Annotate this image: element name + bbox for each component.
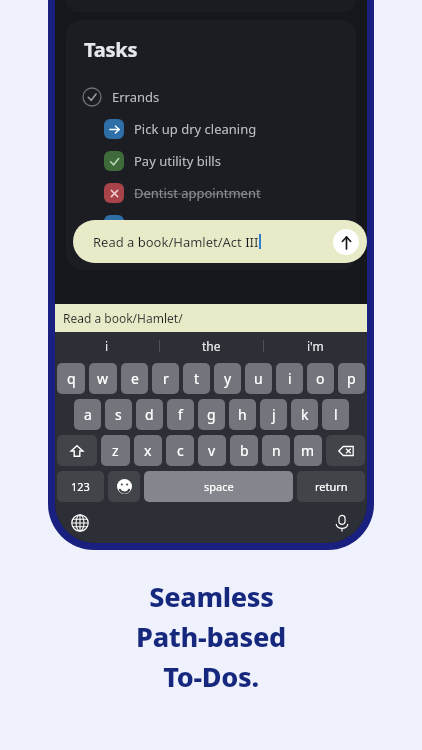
button[interactable]: Shift — [57, 435, 97, 466]
staticText: Dentist appointment — [134, 184, 261, 202]
staticText: f — [178, 405, 183, 424]
staticText: m — [301, 441, 315, 460]
staticText: the — [202, 338, 221, 354]
button[interactable]: t — [183, 363, 210, 394]
staticText: q — [67, 369, 76, 388]
staticText: Errands — [112, 88, 160, 106]
button[interactable]: Errands — [66, 81, 356, 113]
button[interactable]: v — [198, 435, 226, 466]
button[interactable]: i'm — [264, 332, 367, 360]
staticText: v — [208, 441, 216, 460]
button[interactable]: Backspace — [326, 435, 365, 466]
staticText: k — [301, 405, 309, 424]
staticText: Pick up dry cleaning — [134, 120, 257, 138]
button[interactable]: h — [229, 399, 256, 430]
button[interactable]: Dentist appointment — [66, 177, 356, 209]
staticText: i'm — [307, 338, 324, 354]
button[interactable]: return — [297, 471, 365, 502]
button[interactable]: i — [276, 363, 303, 394]
staticText: Pay utility bills — [134, 152, 221, 170]
button[interactable]: z — [101, 435, 130, 466]
staticText: x — [144, 441, 152, 460]
staticText: r — [163, 369, 169, 388]
staticText: y — [224, 369, 232, 388]
staticText: n — [272, 441, 281, 460]
button[interactable]: i — [55, 332, 159, 360]
button[interactable]: Switch language — [67, 510, 93, 536]
button[interactable]: the — [160, 332, 263, 360]
staticText: i — [105, 338, 109, 354]
button[interactable]: o — [307, 363, 334, 394]
button[interactable]: c — [166, 435, 194, 466]
button[interactable]: s — [105, 399, 132, 430]
button[interactable]: Send — [333, 229, 359, 255]
button[interactable]: r — [152, 363, 179, 394]
staticText: g — [207, 405, 216, 424]
staticText: s — [115, 405, 122, 424]
staticText: p — [347, 369, 356, 388]
staticText: d — [145, 405, 154, 424]
staticText: w — [97, 369, 109, 388]
button[interactable]: f — [167, 399, 194, 430]
button[interactable]: m — [294, 435, 322, 466]
staticText: To-Dos. — [163, 658, 259, 695]
staticText: return — [315, 479, 348, 494]
staticText: e — [131, 369, 139, 388]
staticText: Path-based — [136, 618, 286, 655]
staticText: j — [272, 405, 276, 424]
staticText: a — [84, 405, 92, 424]
button[interactable]: Pick up dry cleaning — [66, 113, 356, 145]
button[interactable]: space — [144, 471, 293, 502]
staticText: t — [194, 369, 200, 388]
staticText: space — [204, 479, 234, 494]
button[interactable]: b — [230, 435, 258, 466]
staticText: z — [112, 441, 119, 460]
button[interactable]: Pay utility bills — [66, 145, 356, 177]
staticText: Seamless — [149, 578, 274, 615]
staticText: o — [316, 369, 325, 388]
button[interactable]: j — [260, 399, 287, 430]
button[interactable]: Voice input — [329, 510, 355, 536]
button[interactable]: a — [74, 399, 101, 430]
button[interactable]: n — [262, 435, 290, 466]
staticText: u — [254, 369, 263, 388]
button[interactable]: k — [291, 399, 318, 430]
button[interactable]: 123 — [57, 471, 104, 502]
button[interactable]: x — [134, 435, 162, 466]
staticText: h — [238, 405, 247, 424]
staticText: l — [334, 405, 338, 424]
button[interactable]: l — [322, 399, 349, 430]
button[interactable]: q — [57, 363, 85, 394]
staticText: Tasks — [84, 36, 138, 63]
button[interactable]: Fitness goals — [66, 209, 356, 241]
staticText: Read a book/Hamlet/Act III — [93, 233, 259, 251]
button[interactable]: g — [198, 399, 225, 430]
button[interactable]: w — [89, 363, 117, 394]
staticText: Read a book/Hamlet/ — [63, 310, 183, 326]
staticText: Fitness goals — [134, 216, 213, 234]
button[interactable]: p — [338, 363, 365, 394]
button[interactable]: Emoji — [108, 471, 140, 502]
button[interactable]: y — [214, 363, 241, 394]
staticText: i — [288, 369, 292, 388]
button[interactable]: Read a book/Hamlet/Act III — [73, 220, 367, 263]
staticText: c — [177, 441, 184, 460]
button[interactable]: u — [245, 363, 272, 394]
button[interactable]: e — [121, 363, 148, 394]
button[interactable]: d — [136, 399, 163, 430]
button[interactable]: Read a book/Hamlet/ — [55, 304, 367, 332]
staticText: b — [240, 441, 249, 460]
staticText: 123 — [71, 479, 90, 494]
